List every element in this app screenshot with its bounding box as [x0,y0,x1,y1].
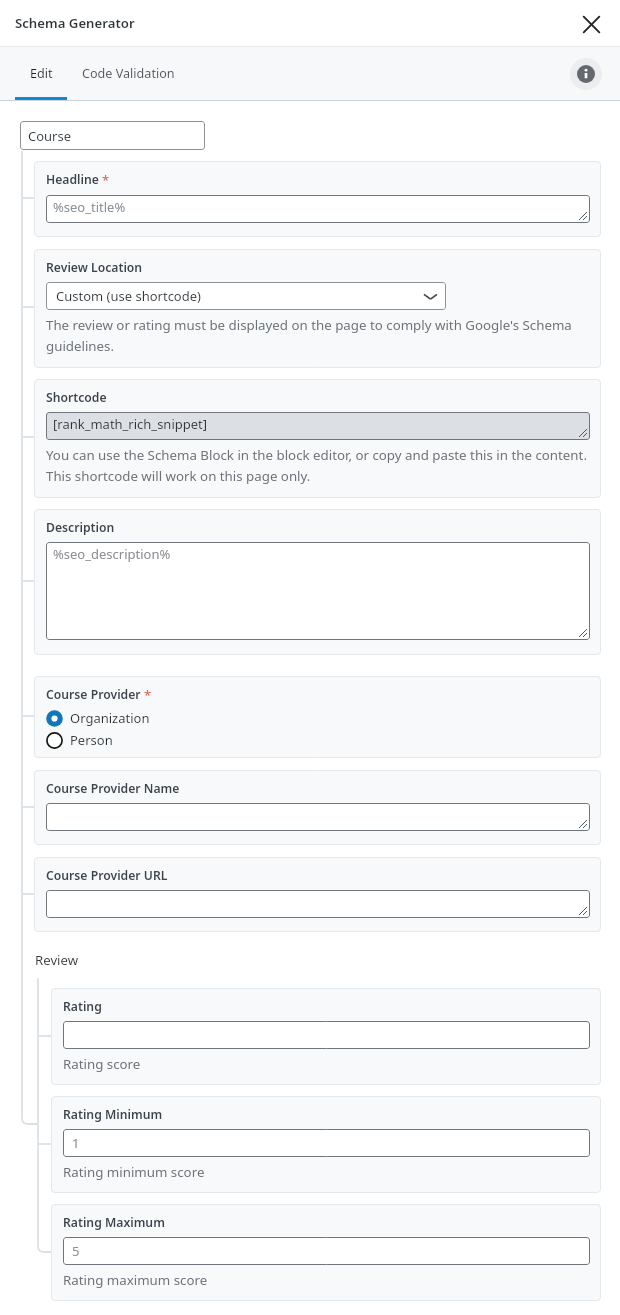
button[interactable]: %seo_description% [46,542,590,640]
staticText: 1 [72,1134,80,1152]
staticText: Organization [70,709,150,727]
staticText: Course Provider [46,686,141,703]
staticText: You can use the Schema Block in the bloc… [46,446,590,485]
staticText: [rank_math_rich_snippet] [53,415,208,433]
staticText: Rating [63,998,102,1015]
button[interactable]: 1 [63,1129,590,1157]
staticText: Description [46,519,115,536]
button[interactable]: Custom (use shortcode) [46,282,446,310]
button[interactable]: Edit [15,58,67,89]
staticText: * [144,686,152,704]
staticText: Rating Minimum [63,1106,163,1123]
button[interactable]: [rank_math_rich_snippet] [46,412,590,440]
staticText: Course Provider URL [46,867,168,884]
staticText: %seo_description% [53,545,171,563]
staticText: Review Location [46,259,143,276]
button[interactable] [46,803,590,831]
staticText: Rating minimum score [63,1163,205,1181]
staticText: Person [70,731,113,749]
staticText: Schema Generator [15,14,135,32]
button[interactable]: Organization [46,707,150,729]
staticText: Review [35,951,79,969]
button[interactable] [46,890,590,918]
button[interactable]: Info [570,58,602,90]
staticText: Custom (use shortcode) [56,287,201,305]
staticText: Rating Maximum [63,1214,165,1231]
button[interactable]: Course [20,121,205,150]
button[interactable]: %seo_title% [46,195,590,223]
staticText: Shortcode [46,389,107,406]
staticText: Headline [46,171,99,188]
button[interactable]: 5 [63,1237,590,1265]
button[interactable]: Code Validation [80,58,177,89]
staticText: Course [28,127,72,145]
staticText: * [102,171,110,189]
staticText: %seo_title% [53,198,126,216]
button[interactable]: Person [46,729,113,751]
button[interactable]: Close [576,8,606,38]
staticText: Code Validation [82,65,175,82]
staticText: The review or rating must be displayed o… [46,316,590,355]
staticText: Rating score [63,1055,141,1073]
button[interactable] [63,1021,590,1049]
staticText: Rating maximum score [63,1271,208,1289]
staticText: 5 [72,1242,80,1260]
staticText: Edit [30,65,53,82]
staticText: Course Provider Name [46,780,180,797]
